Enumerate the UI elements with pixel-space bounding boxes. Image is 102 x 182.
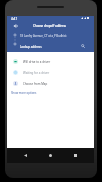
staticText: Choose dropoff address	[33, 24, 66, 28]
staticText: Lookup address	[20, 45, 42, 49]
button[interactable]: Search	[78, 41, 87, 50]
staticText: 4:41	[11, 17, 18, 21]
button[interactable]: Will drive to a driver	[7, 56, 94, 67]
button[interactable]: Navigate back	[11, 21, 21, 31]
button[interactable]: Waiting for a driver	[7, 67, 94, 78]
button[interactable]: Recent apps	[69, 149, 82, 162]
button[interactable]: Home	[44, 149, 57, 162]
staticText: Show more options	[11, 91, 37, 95]
button[interactable]: Back	[19, 149, 32, 162]
staticText: Will drive to a driver	[23, 60, 51, 64]
button[interactable]: Show more options	[10, 89, 38, 96]
staticText: Choose from Map	[23, 82, 48, 86]
button[interactable]: Choose from Map	[7, 78, 94, 89]
staticText: 18 Lanfry Avenue, CT at a,P Budhist	[20, 34, 67, 38]
staticText: Waiting for a driver	[23, 71, 50, 75]
